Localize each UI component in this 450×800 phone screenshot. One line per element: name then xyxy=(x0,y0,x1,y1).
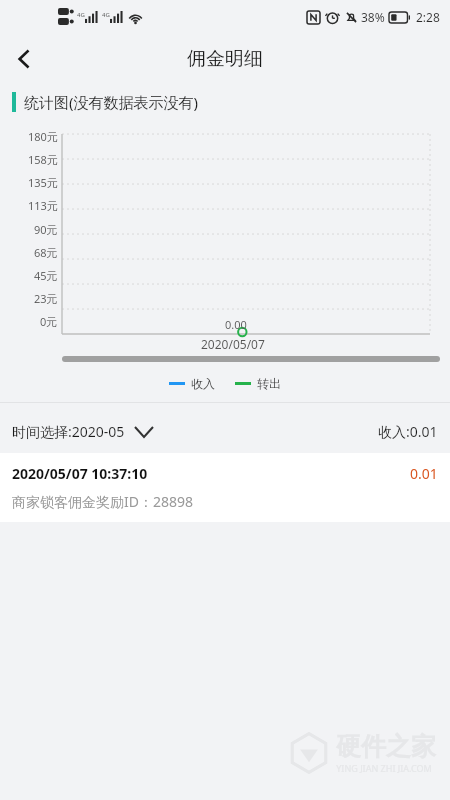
staticText: 收入:0.01 xyxy=(378,422,438,441)
staticText: 135元 xyxy=(28,175,58,190)
staticText: 0元 xyxy=(40,314,58,329)
staticText: 158元 xyxy=(28,152,58,167)
staticText: 113元 xyxy=(28,198,58,213)
staticText: 4G xyxy=(102,11,110,19)
staticText: 0.01 xyxy=(410,464,438,483)
staticText: 68元 xyxy=(34,245,58,260)
staticText: YING JIAN ZHI JIA.COM xyxy=(336,762,432,774)
staticText: 23元 xyxy=(34,291,58,306)
staticText: 38% xyxy=(361,9,385,25)
button[interactable]: 时间选择:2020-05 xyxy=(12,422,153,441)
staticText: 2020/05/07 xyxy=(201,336,265,352)
staticText: 0.00 xyxy=(225,317,247,332)
staticText: 45元 xyxy=(34,268,58,283)
staticText: 商家锁客佣金奖励ID：28898 xyxy=(12,492,194,511)
staticText: 4G xyxy=(77,11,85,19)
button[interactable]: Back xyxy=(0,35,48,83)
staticText: 转出 xyxy=(257,376,281,391)
staticText: 2:28 xyxy=(416,9,440,25)
staticText: 180元 xyxy=(28,129,58,144)
staticText: 2020/05/07 10:37:10 xyxy=(12,464,148,483)
staticText: 统计图(没有数据表示没有) xyxy=(24,92,199,112)
staticText: 时间选择:2020-05 xyxy=(12,422,125,441)
staticText: 90元 xyxy=(34,222,58,237)
button[interactable]: 2020/05/07 10:37:10 xyxy=(0,453,450,522)
staticText: 收入 xyxy=(191,376,215,391)
staticText: 佣金明细 xyxy=(187,47,263,71)
staticText: 硬件之家 xyxy=(336,731,436,762)
